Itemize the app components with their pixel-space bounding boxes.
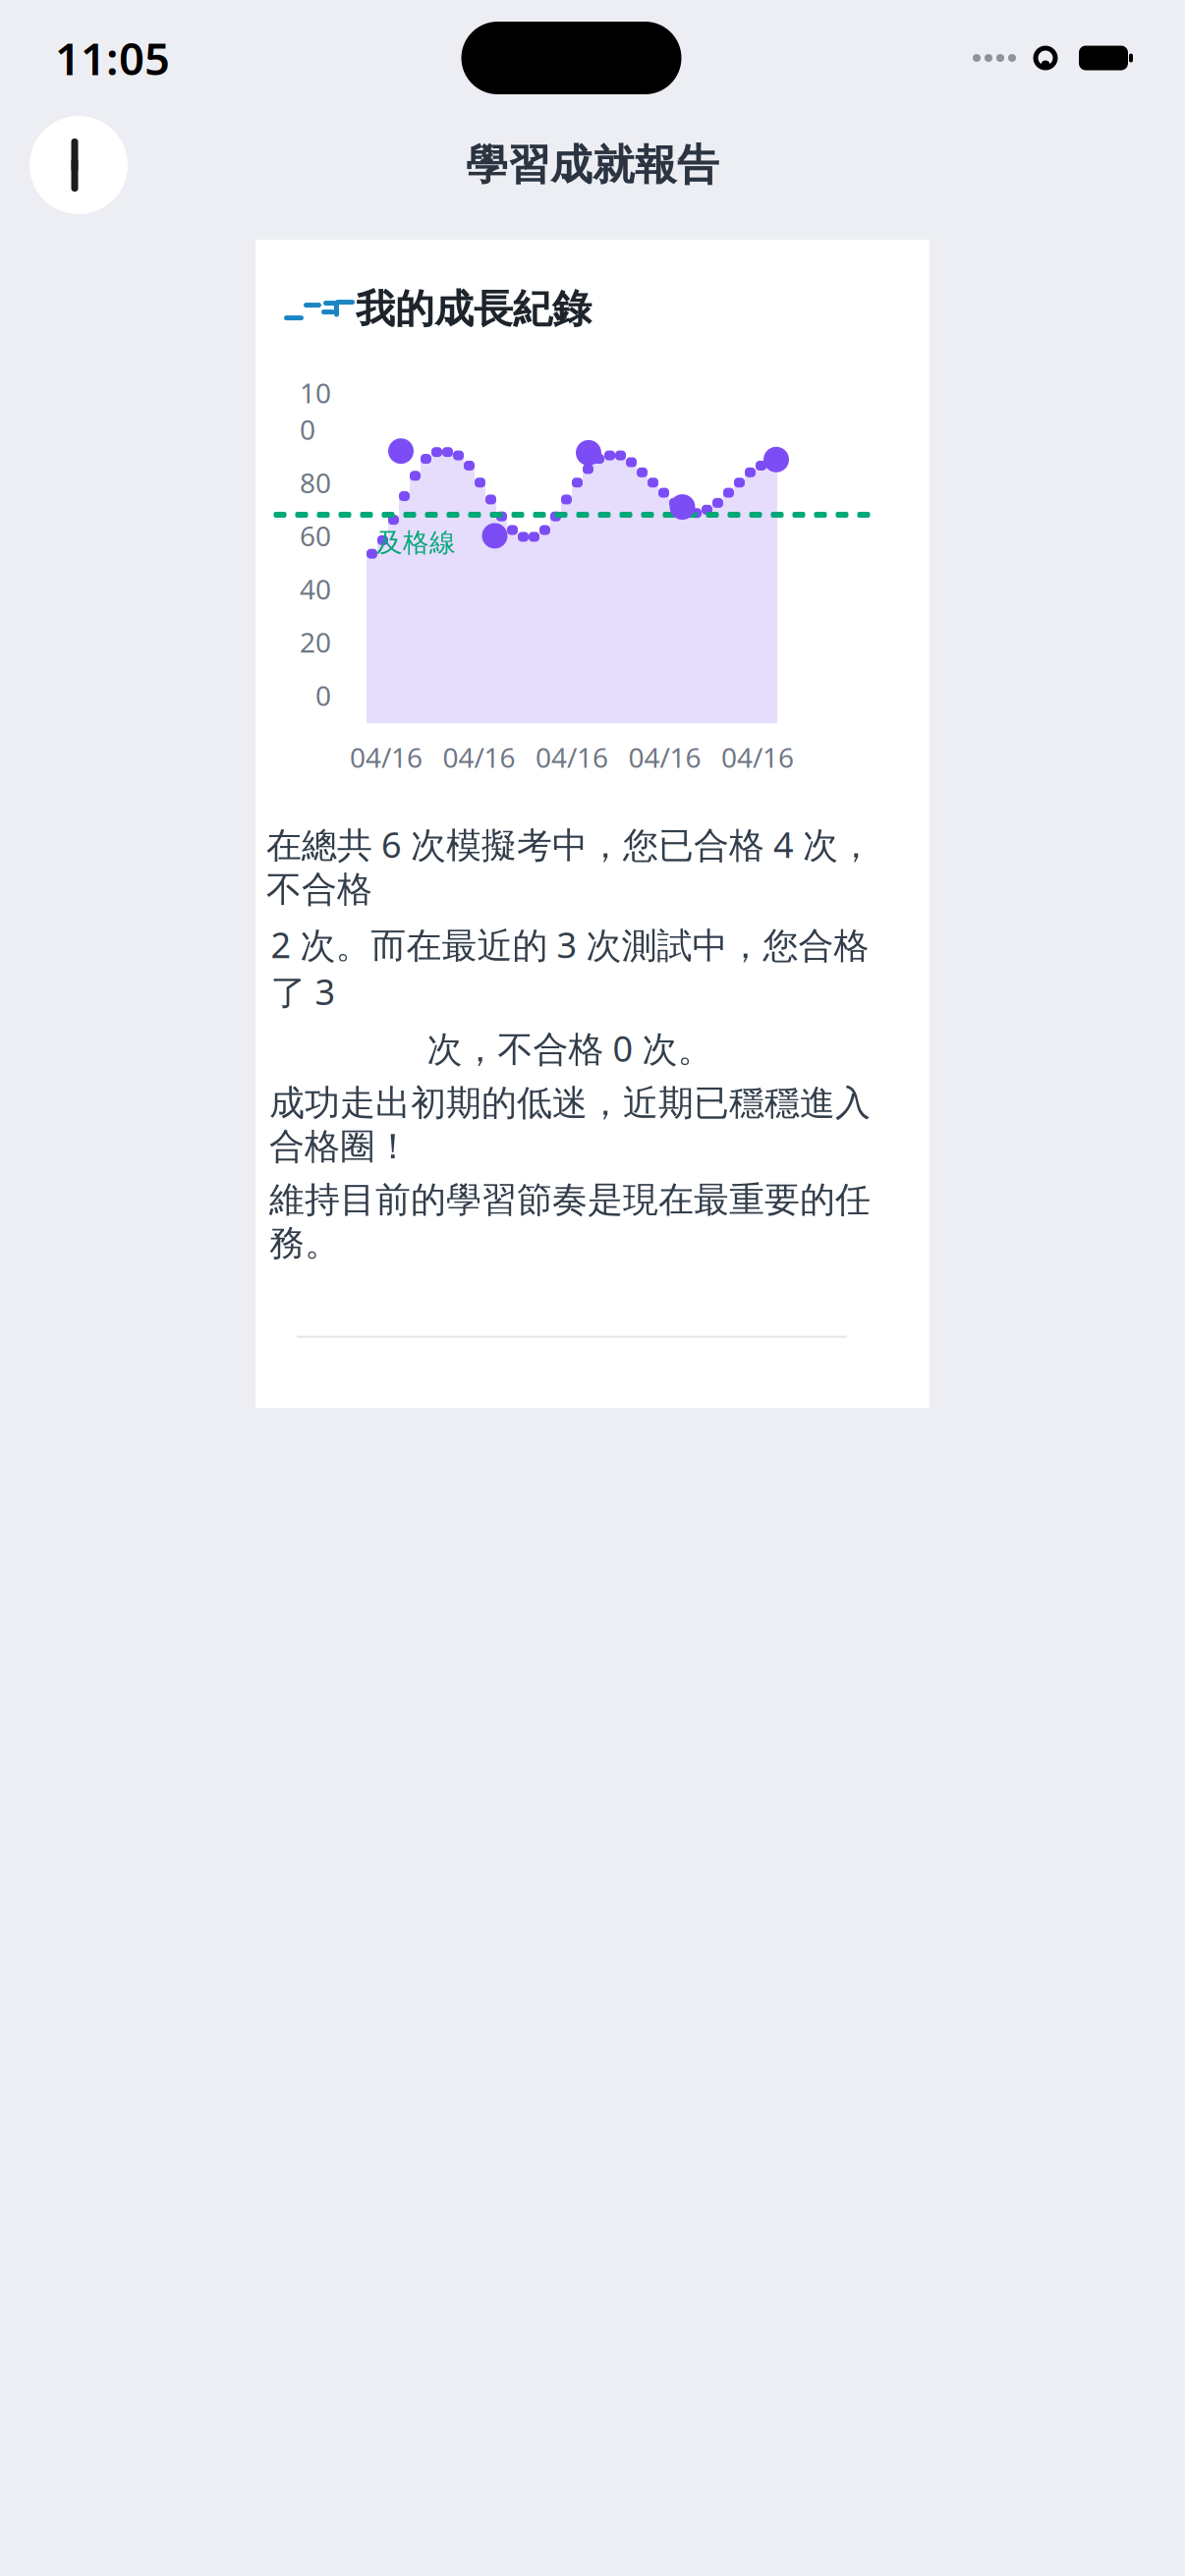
staticText: 維持目前的學習節奏是現在最重要的任務。 xyxy=(269,1178,871,1265)
staticText: 04/16 xyxy=(350,739,423,775)
staticText: 60 xyxy=(300,517,331,554)
staticText: 學習成就報告 xyxy=(466,139,719,191)
staticText: 在總共 6 次模擬考中，您已合格 4 次，不合格 xyxy=(266,821,874,911)
staticText: 20 xyxy=(300,624,331,660)
staticText: 11:05 xyxy=(55,28,170,88)
staticText: 我的成績落點 xyxy=(356,1406,592,1455)
staticText: 0 xyxy=(315,677,331,713)
staticText: 成功走出初期的低迷，近期已穩穩進入合格圈！ xyxy=(269,1081,871,1168)
staticText: 2 次。而在最近的 3 次測試中，您合格了 3 xyxy=(271,921,869,1015)
staticText: 次，不合格 0 次。 xyxy=(427,1025,713,1072)
staticText: 100 xyxy=(300,374,331,448)
button[interactable]: 返回 xyxy=(29,116,128,214)
staticText: 04/16 xyxy=(443,739,515,775)
staticText: 及格線 xyxy=(376,527,456,559)
staticText: 80 xyxy=(300,464,331,501)
staticText: 04/16 xyxy=(721,739,794,775)
staticText: 04/16 xyxy=(536,739,608,775)
staticText: 04/16 xyxy=(628,739,701,775)
staticText: 我的成長紀錄 xyxy=(356,285,592,333)
staticText: 40 xyxy=(300,571,331,607)
